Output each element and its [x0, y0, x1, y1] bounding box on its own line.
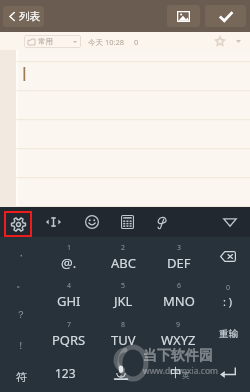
- staticText: 123: [55, 365, 76, 381]
- staticText: 4: [67, 281, 72, 291]
- button[interactable]: ！: [0, 330, 42, 361]
- staticText: 。: [16, 277, 26, 290]
- staticText: 2: [121, 243, 126, 253]
- button[interactable]: Insert image: [167, 5, 200, 27]
- staticText: 1: [67, 243, 72, 253]
- staticText: 0: [226, 283, 231, 293]
- button[interactable]: 1: [42, 237, 96, 275]
- button[interactable]: Hide keyboard: [210, 207, 250, 237]
- staticText: 列表: [19, 10, 40, 23]
- staticText: 常用: [38, 37, 53, 46]
- button[interactable]: Number pad: [110, 207, 145, 237]
- staticText: 中: [170, 365, 182, 380]
- button[interactable]: 3: [151, 237, 206, 275]
- button[interactable]: 8: [96, 314, 151, 353]
- staticText: ABC: [111, 254, 136, 272]
- staticText: MNO: [163, 292, 195, 310]
- staticText: DEF: [167, 254, 191, 272]
- staticText: 9: [176, 320, 181, 330]
- staticText: TUV: [111, 331, 136, 349]
- staticText: 当下软件园: [143, 347, 213, 365]
- staticText: ，: [16, 246, 26, 259]
- staticText: WXYZ: [161, 331, 196, 349]
- staticText: 0: [134, 37, 139, 47]
- button[interactable]: 2: [96, 237, 151, 275]
- staticText: JKL: [114, 292, 133, 310]
- button[interactable]: Emoticon: [206, 275, 250, 314]
- button[interactable]: 列表: [3, 6, 44, 27]
- button[interactable]: Emoji: [74, 207, 110, 237]
- button[interactable]: 常用: [24, 35, 81, 48]
- button[interactable]: Keyboard settings: [0, 207, 33, 237]
- staticText: 3: [177, 243, 182, 253]
- staticText: 今天 10:28: [88, 37, 125, 47]
- button[interactable]: Backspace: [206, 237, 250, 275]
- button[interactable]: 5: [96, 275, 151, 314]
- staticText: 符: [16, 370, 27, 384]
- staticText: @.: [61, 254, 77, 272]
- button[interactable]: 123: [42, 353, 88, 392]
- staticText: : ): [223, 294, 233, 309]
- staticText: PQRS: [52, 331, 86, 349]
- staticText: 重输: [219, 328, 238, 340]
- staticText: 5: [121, 281, 126, 291]
- staticText: www.downxia.com: [143, 365, 219, 377]
- button[interactable]: Enter: [206, 353, 250, 392]
- staticText: ！: [16, 339, 26, 352]
- button[interactable]: More options: [232, 35, 244, 47]
- staticText: GHI: [57, 292, 81, 310]
- staticText: 7: [67, 320, 72, 330]
- button[interactable]: Done: [205, 5, 246, 27]
- button[interactable]: Voice input: [88, 353, 154, 392]
- staticText: 英: [182, 371, 190, 380]
- button[interactable]: Move cursor: [33, 207, 74, 237]
- button[interactable]: 4: [42, 275, 96, 314]
- button[interactable]: Handwriting: [145, 207, 178, 237]
- button[interactable]: 9: [151, 314, 206, 353]
- staticText: 8: [121, 320, 126, 330]
- button[interactable]: 7: [42, 314, 96, 353]
- staticText: ？: [16, 308, 26, 321]
- button[interactable]: 符: [0, 361, 42, 392]
- button[interactable]: 中: [154, 353, 206, 392]
- button[interactable]: ？: [0, 299, 42, 330]
- button[interactable]: 6: [151, 275, 206, 314]
- button[interactable]: Re-enter: [206, 314, 250, 353]
- staticText: 6: [177, 281, 182, 291]
- button[interactable]: Favorite: [213, 34, 227, 48]
